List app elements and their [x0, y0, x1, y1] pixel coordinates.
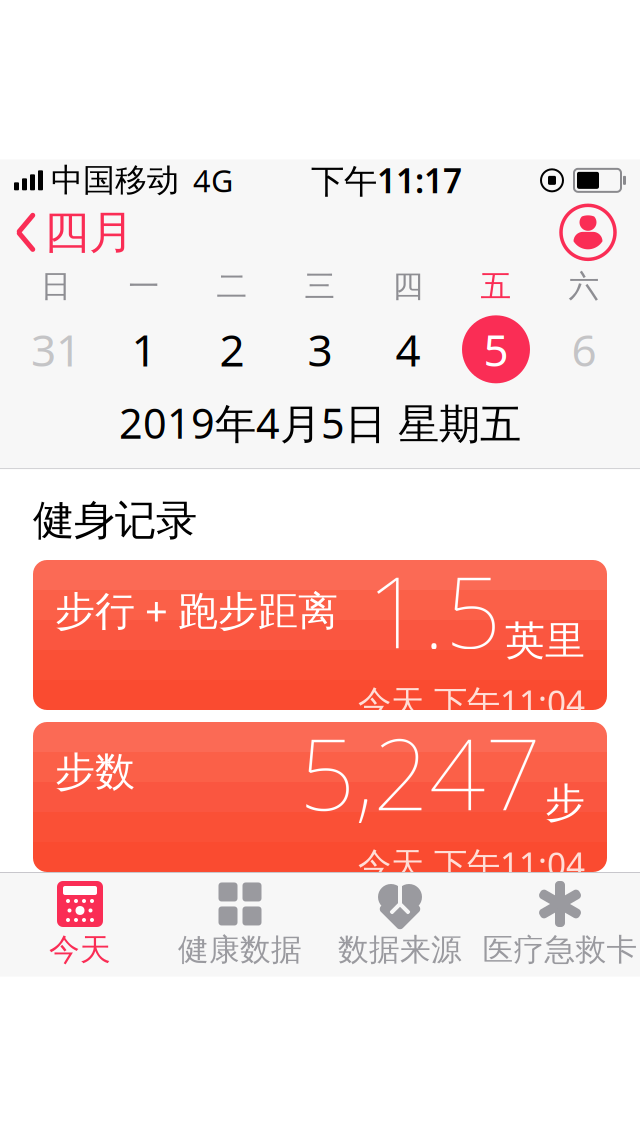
staticText: 6 [571, 320, 596, 378]
button[interactable]: 一 [100, 271, 188, 383]
staticText: 四月 [44, 204, 134, 260]
staticText: 1 [131, 320, 156, 378]
button[interactable]: 数据来源 [320, 873, 480, 977]
button[interactable]: 医疗急救卡 [480, 873, 640, 977]
staticText: 二 [216, 267, 247, 305]
staticText: 数据来源 [338, 931, 462, 969]
staticText: 健康数据 [178, 931, 302, 969]
staticText: 一 [128, 267, 159, 305]
staticText: 4G [193, 160, 233, 201]
staticText: 步行 + 跑步距离 [55, 583, 338, 636]
button[interactable]: 三 [276, 271, 364, 383]
staticText: 医疗急救卡 [482, 931, 637, 969]
staticText: 今天 [49, 931, 111, 969]
staticText: 4 [395, 320, 420, 378]
staticText: 2 [219, 320, 244, 378]
button[interactable]: 步数 [33, 722, 607, 872]
staticText: 今天 下午11:04 [358, 679, 585, 724]
staticText: 三 [304, 267, 335, 305]
staticText: 今天 下午11:04 [358, 841, 585, 886]
button[interactable]: 四 [364, 271, 452, 383]
button[interactable]: 步行 + 跑步距离 [33, 560, 607, 710]
button[interactable]: 个人资料 [558, 202, 618, 262]
button[interactable]: 四月 [16, 198, 144, 266]
staticText: 5 [483, 320, 508, 378]
staticText: 步数 [55, 747, 135, 796]
staticText: 步 [545, 778, 585, 827]
staticText: 5,247 [299, 706, 541, 837]
button[interactable]: 健康数据 [160, 873, 320, 977]
button[interactable]: 今天 [0, 873, 160, 977]
staticText: 31 [31, 320, 81, 378]
staticText: 五 [480, 267, 511, 305]
staticText: 英里 [505, 616, 585, 665]
staticText: 日 [40, 267, 71, 305]
staticText: 3 [307, 320, 332, 378]
staticText: 中国移动 [51, 161, 179, 200]
staticText: 健身记录 [33, 495, 197, 546]
staticText: 2019年4月5日 星期五 [119, 395, 521, 450]
button[interactable]: 五 [452, 271, 540, 383]
button[interactable]: 日 [12, 271, 100, 383]
staticText: 四 [392, 267, 423, 305]
staticText: 1.5 [367, 544, 501, 675]
staticText: 下午11:17 [311, 158, 462, 202]
button[interactable]: 二 [188, 271, 276, 383]
button[interactable]: 六 [540, 271, 628, 383]
staticText: 六 [568, 267, 599, 305]
